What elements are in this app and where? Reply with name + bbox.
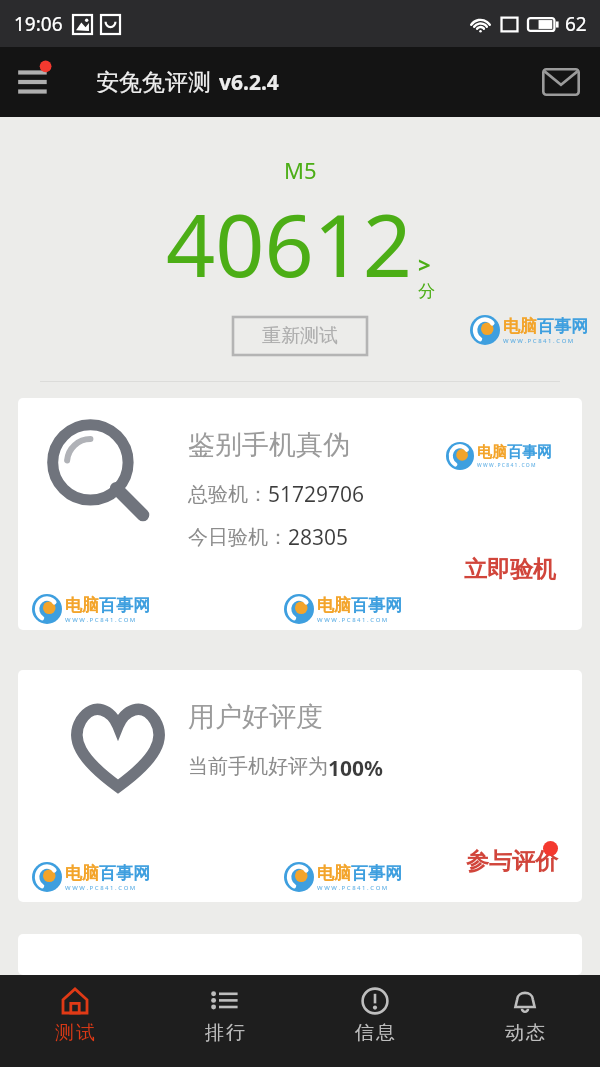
button[interactable]: 用户好评度	[18, 670, 582, 902]
staticText: 百事网	[351, 595, 402, 616]
button[interactable]: Menu	[12, 54, 68, 110]
staticText: 立即验机	[464, 555, 556, 584]
staticText: 重新测试	[262, 324, 338, 348]
staticText: 电脑	[317, 863, 351, 884]
staticText: M5	[284, 155, 317, 185]
staticText: 用户好评度	[188, 700, 323, 734]
staticText: 鉴别手机真伪	[188, 428, 350, 462]
button[interactable]: Messages	[538, 59, 584, 105]
staticText: 测试	[54, 1021, 96, 1045]
staticText: 电脑	[317, 595, 351, 616]
button[interactable]: 鉴别手机真伪	[18, 398, 582, 630]
button[interactable]: 排行	[150, 975, 300, 1045]
staticText: 信息	[354, 1021, 396, 1045]
staticText: 40612	[166, 185, 412, 302]
button[interactable]: 重新测试	[233, 317, 367, 355]
staticText: 百事网	[537, 316, 588, 337]
button[interactable]: 测试	[0, 975, 150, 1045]
button[interactable]: 立即验机	[464, 555, 556, 584]
staticText: >	[418, 249, 431, 279]
staticText: 参与评价	[466, 847, 558, 876]
staticText: 当前手机好评为	[188, 754, 328, 779]
staticText: 电脑	[477, 443, 507, 462]
staticText: 28305	[288, 523, 349, 552]
staticText: W W W . P C 8 4 1 . C O M	[65, 884, 136, 892]
staticText: 动态	[504, 1021, 546, 1045]
staticText: W W W . P C 8 4 1 . C O M	[317, 616, 388, 624]
staticText: 百事网	[99, 595, 150, 616]
staticText: W W W . P C 8 4 1 . C O M	[503, 337, 574, 345]
staticText: W W W . P C 8 4 1 . C O M	[477, 462, 536, 469]
staticText: 百事网	[507, 443, 552, 462]
button[interactable]: 信息	[300, 975, 450, 1045]
staticText: 51729706	[268, 480, 365, 509]
staticText: 电脑	[503, 316, 537, 337]
staticText: W W W . P C 8 4 1 . C O M	[317, 884, 388, 892]
staticText: 电脑	[65, 595, 99, 616]
button[interactable]: 动态	[450, 975, 600, 1045]
staticText: 百事网	[351, 863, 402, 884]
staticText: 排行	[204, 1021, 246, 1045]
staticText: 62	[565, 11, 587, 37]
staticText: W W W . P C 8 4 1 . C O M	[65, 616, 136, 624]
staticText: 百事网	[99, 863, 150, 884]
staticText: 今日验机：	[188, 525, 288, 550]
staticText: 电脑	[65, 863, 99, 884]
staticText: 分	[418, 281, 435, 302]
staticText: 100%	[328, 754, 383, 783]
staticText: 19:06	[14, 11, 63, 37]
staticText: v6.2.4	[219, 68, 279, 97]
staticText: 安兔兔评测	[96, 68, 211, 97]
button[interactable]: 参与评价	[466, 841, 558, 876]
staticText: 总验机：	[188, 482, 268, 507]
